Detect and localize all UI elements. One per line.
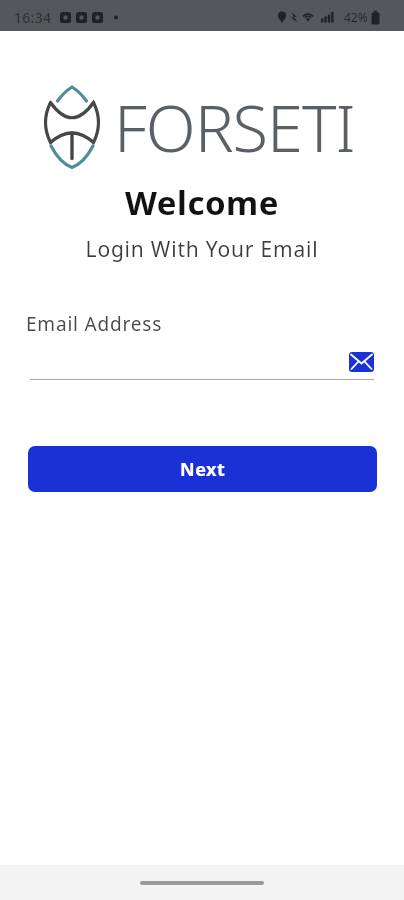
staticText: Email Address xyxy=(26,311,163,337)
staticText: Next xyxy=(180,457,226,482)
staticText: 42% xyxy=(344,9,368,25)
staticText: Login With Your Email xyxy=(0,235,404,264)
staticText: Welcome xyxy=(0,180,404,225)
staticText: 16:34 xyxy=(14,8,52,27)
staticText: FORSETI xyxy=(114,83,355,172)
